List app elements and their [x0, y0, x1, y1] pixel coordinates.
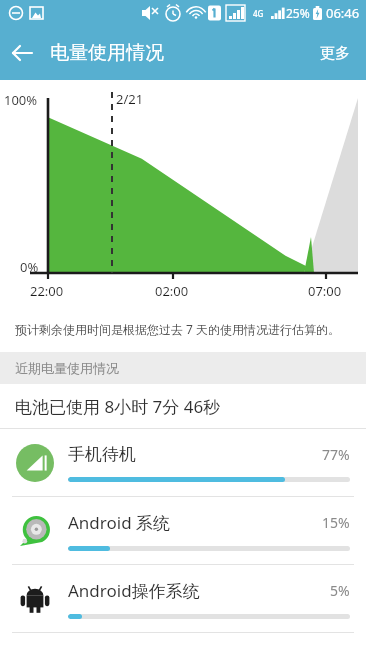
- staticText: 电池已使用 8小时 7分 46秒: [15, 395, 221, 418]
- staticText: 近期电量使用情况: [15, 360, 119, 376]
- staticText: 更多: [320, 44, 350, 63]
- staticText: 25%: [286, 5, 310, 21]
- staticText: 15%: [322, 513, 350, 532]
- staticText: 22:00: [30, 282, 64, 300]
- staticText: 2/21: [116, 90, 144, 108]
- staticText: 06:46: [326, 4, 360, 22]
- button[interactable]: 更多: [304, 32, 366, 75]
- button[interactable]: 手机待机: [0, 429, 366, 497]
- staticText: 4G: [253, 8, 264, 19]
- button[interactable]: Android操作系统: [0, 565, 366, 633]
- staticText: 电量使用情况: [50, 41, 164, 65]
- staticText: 77%: [322, 445, 350, 464]
- button[interactable]: Android 系统: [0, 497, 366, 565]
- staticText: 100%: [4, 91, 38, 109]
- staticText: Android操作系统: [68, 579, 330, 602]
- staticText: 5%: [330, 581, 350, 600]
- staticText: 手机待机: [68, 444, 322, 465]
- staticText: 0%: [20, 258, 39, 276]
- staticText: 02:00: [155, 282, 189, 300]
- button[interactable]: Back: [0, 31, 44, 75]
- staticText: Android 系统: [68, 511, 322, 534]
- staticText: 07:00: [308, 282, 342, 300]
- staticText: 预计剩余使用时间是根据您过去 7 天的使用情况进行估算的。: [15, 321, 341, 337]
